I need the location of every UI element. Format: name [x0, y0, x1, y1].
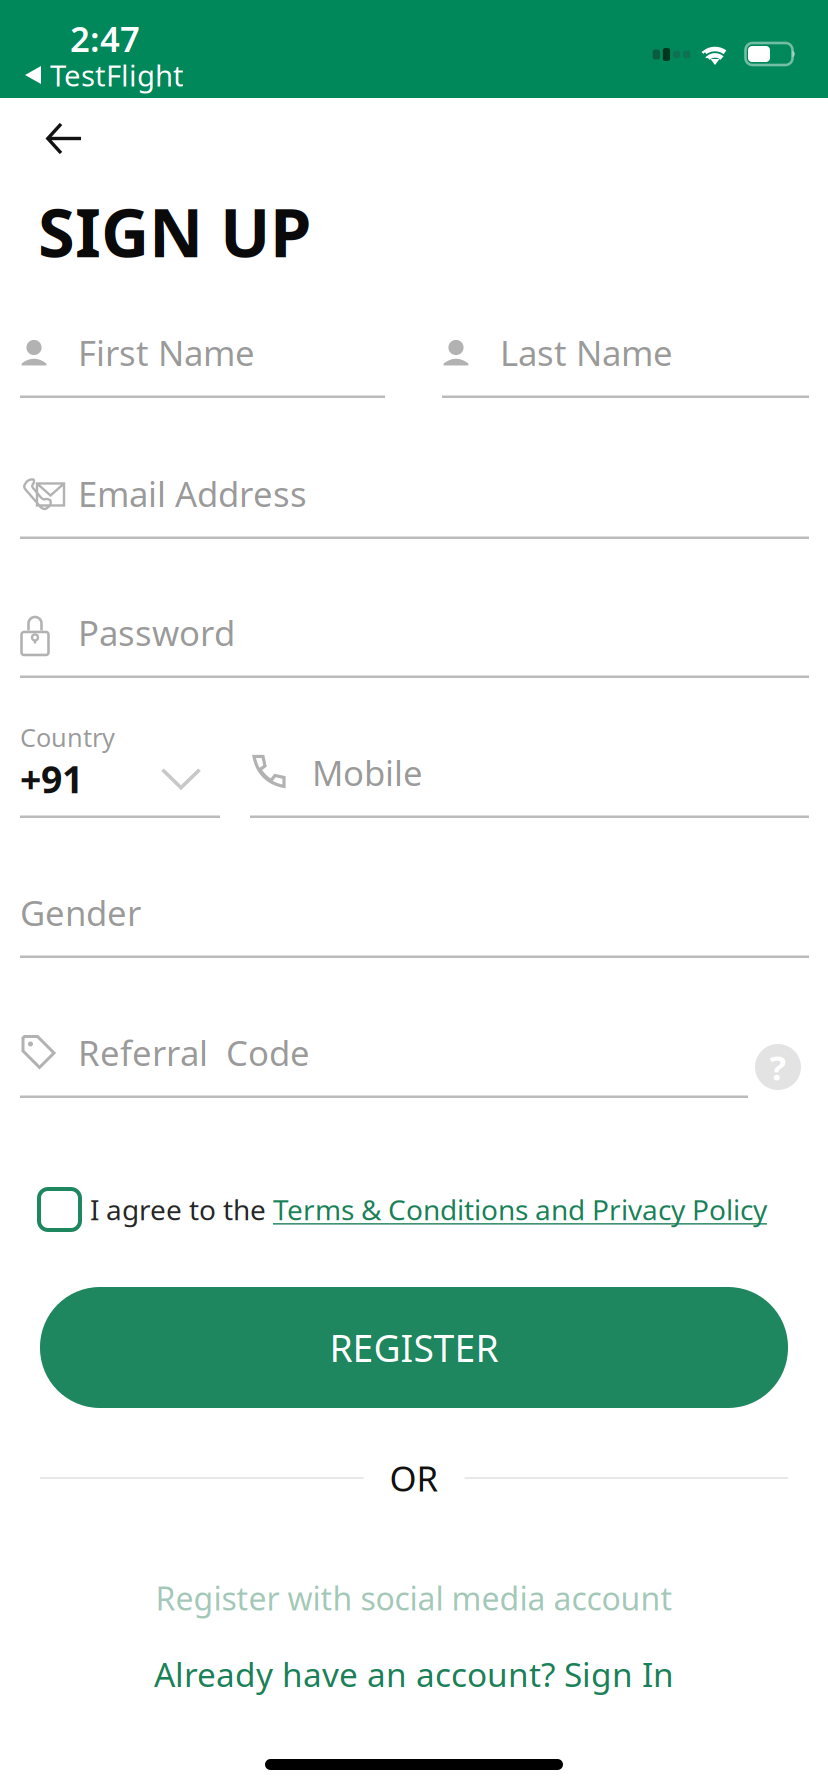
staticText: Mobile	[312, 749, 423, 795]
staticText: TestFlight	[50, 55, 184, 94]
button[interactable]: Register with social media account	[155, 1548, 672, 1648]
staticText: Last Name	[500, 329, 673, 375]
staticText: I agree to the	[90, 1191, 273, 1228]
staticText: First Name	[78, 329, 255, 375]
staticText: Terms & Conditions and Privacy Policy	[273, 1191, 767, 1228]
staticText: SIGN UP	[38, 187, 311, 276]
staticText: OR	[389, 1455, 438, 1501]
button[interactable]: Back	[0, 98, 107, 169]
staticText: Referral Code	[78, 1029, 310, 1075]
staticText: ?	[769, 1044, 786, 1090]
button[interactable]: REGISTER	[0, 1287, 828, 1408]
staticText: Register with social media account	[155, 1577, 672, 1619]
button[interactable]: Terms & Conditions and Privacy Policy	[273, 1191, 767, 1228]
staticText: Password	[78, 609, 235, 655]
button[interactable]: Referral code help	[755, 1044, 801, 1090]
button[interactable]: Agree to terms and conditions	[39, 1181, 90, 1238]
button[interactable]: Already have an account? Sign In	[154, 1648, 674, 1700]
staticText: Gender	[20, 889, 141, 935]
staticText: +91	[20, 754, 83, 803]
staticText: 2:47	[70, 15, 140, 61]
staticText: Country	[20, 720, 115, 754]
staticText: Already have an account? Sign In	[154, 1652, 674, 1696]
staticText: REGISTER	[329, 1323, 498, 1372]
staticText: Email Address	[78, 470, 307, 516]
